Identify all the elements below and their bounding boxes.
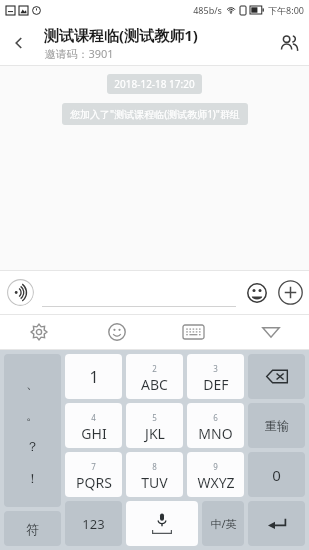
button[interactable]: Emoticons bbox=[78, 314, 155, 350]
button[interactable]: 中/英 bbox=[202, 501, 244, 546]
staticText: 8 bbox=[152, 461, 157, 472]
staticText: WXYZ bbox=[197, 473, 235, 492]
button[interactable]: Voice message bbox=[6, 278, 34, 306]
button[interactable]: 9 bbox=[187, 452, 244, 497]
button[interactable]: Enter bbox=[248, 501, 305, 546]
staticText: 重输 bbox=[265, 418, 289, 433]
staticText: 测试课程临(测试教师1) bbox=[44, 25, 198, 45]
button[interactable]: 4 bbox=[65, 403, 122, 448]
staticText: PQRS bbox=[76, 473, 112, 492]
staticText: ABC bbox=[141, 375, 168, 394]
staticText: 9 bbox=[213, 461, 218, 472]
staticText: 6 bbox=[213, 412, 218, 423]
staticText: 中/英 bbox=[210, 516, 237, 531]
staticText: 下午8:00 bbox=[268, 4, 304, 16]
staticText: 2018-12-18 17:20 bbox=[114, 77, 195, 91]
staticText: MNO bbox=[198, 424, 233, 443]
staticText: ！ bbox=[26, 470, 39, 486]
button[interactable]: Hide keyboard bbox=[232, 314, 309, 350]
button[interactable]: Backspace bbox=[248, 354, 305, 399]
button[interactable]: 1 bbox=[65, 354, 122, 399]
button[interactable]: 5 bbox=[126, 403, 183, 448]
staticText: 您加入了"测试课程临(测试教师1)"群组 bbox=[70, 107, 240, 121]
button[interactable]: Group members bbox=[267, 20, 309, 66]
button[interactable]: 123 bbox=[65, 501, 122, 546]
button[interactable]: Punctuation bbox=[4, 354, 61, 507]
button[interactable]: Emoji bbox=[245, 281, 268, 304]
staticText: 3 bbox=[213, 363, 218, 374]
button[interactable]: 8 bbox=[126, 452, 183, 497]
button[interactable]: Voice input / space bbox=[126, 501, 198, 546]
staticText: 4 bbox=[91, 412, 96, 423]
button[interactable]: 2 bbox=[126, 354, 183, 399]
button[interactable]: 6 bbox=[187, 403, 244, 448]
button[interactable]: 符 bbox=[4, 511, 61, 546]
staticText: 符 bbox=[26, 521, 39, 537]
staticText: 2 bbox=[152, 363, 157, 374]
staticText: 1 bbox=[89, 366, 99, 388]
button[interactable]: Back bbox=[0, 20, 38, 66]
button[interactable]: 7 bbox=[65, 452, 122, 497]
button[interactable]: 0 bbox=[248, 452, 305, 497]
staticText: 、 bbox=[26, 375, 39, 391]
staticText: 485b/s bbox=[193, 4, 222, 16]
staticText: 0 bbox=[272, 465, 281, 485]
staticText: 5 bbox=[152, 412, 157, 423]
staticText: DEF bbox=[203, 375, 229, 394]
button[interactable]: Input settings bbox=[0, 314, 78, 350]
button[interactable]: Keyboard layout bbox=[155, 314, 232, 350]
staticText: 7 bbox=[91, 461, 96, 472]
staticText: 邀请码：3901 bbox=[44, 46, 114, 61]
button[interactable]: Message input bbox=[42, 277, 236, 307]
button[interactable]: 3 bbox=[187, 354, 244, 399]
button[interactable]: 重输 bbox=[248, 403, 305, 448]
staticText: TUV bbox=[141, 473, 168, 492]
button[interactable]: More options bbox=[277, 279, 303, 305]
staticText: 123 bbox=[82, 515, 105, 533]
staticText: 。 bbox=[26, 407, 39, 423]
staticText: JKL bbox=[145, 424, 165, 443]
staticText: GHI bbox=[81, 424, 107, 443]
staticText: ？ bbox=[26, 438, 39, 454]
